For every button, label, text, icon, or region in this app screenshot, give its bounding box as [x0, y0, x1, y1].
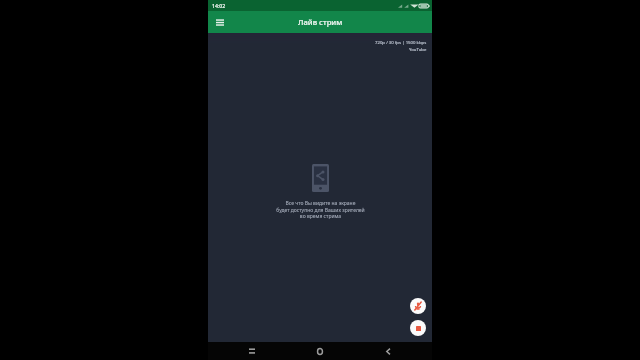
- staticText: Лайв стрим: [298, 17, 343, 27]
- button[interactable]: Menu: [212, 14, 228, 30]
- button[interactable]: Back: [379, 342, 397, 360]
- button[interactable]: Stop stream: [410, 320, 426, 336]
- button[interactable]: Recent apps: [243, 342, 261, 360]
- button[interactable]: Home: [311, 342, 329, 360]
- staticText: 720p / 30 fps | 1500 kbps: [375, 39, 427, 45]
- staticText: YouTube: [409, 46, 427, 52]
- staticText: Все что Вы видите на экране будет доступ…: [276, 200, 365, 219]
- staticText: 14:02: [212, 2, 226, 9]
- button[interactable]: Mute microphone: [410, 298, 426, 314]
